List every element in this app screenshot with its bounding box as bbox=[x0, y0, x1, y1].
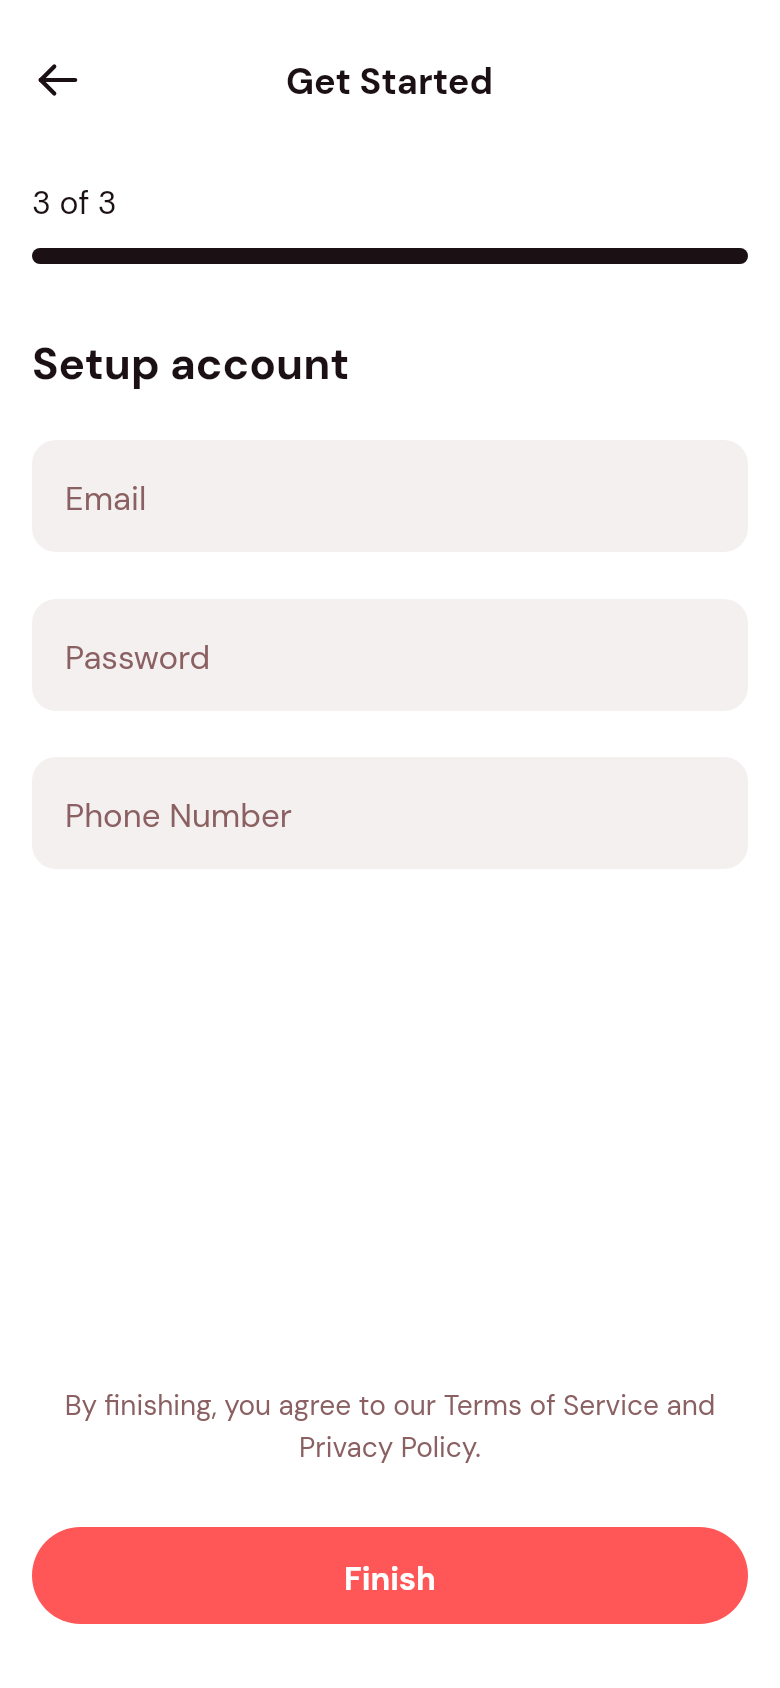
staticText: Email bbox=[65, 477, 147, 520]
staticText: Phone Number bbox=[65, 794, 292, 837]
button[interactable]: Finish bbox=[32, 1527, 748, 1624]
button[interactable]: Phone Number bbox=[32, 757, 748, 869]
staticText: Finish bbox=[344, 1558, 436, 1600]
staticText: 3 of 3 bbox=[32, 182, 117, 224]
button[interactable]: Email bbox=[32, 440, 748, 552]
staticText: Setup account bbox=[32, 335, 350, 392]
staticText: Get Started bbox=[286, 58, 494, 105]
button[interactable]: Password bbox=[32, 599, 748, 711]
button[interactable]: Back bbox=[20, 42, 96, 118]
staticText: By finishing, you agree to our Terms of … bbox=[46, 1387, 734, 1466]
staticText: Password bbox=[65, 636, 211, 679]
